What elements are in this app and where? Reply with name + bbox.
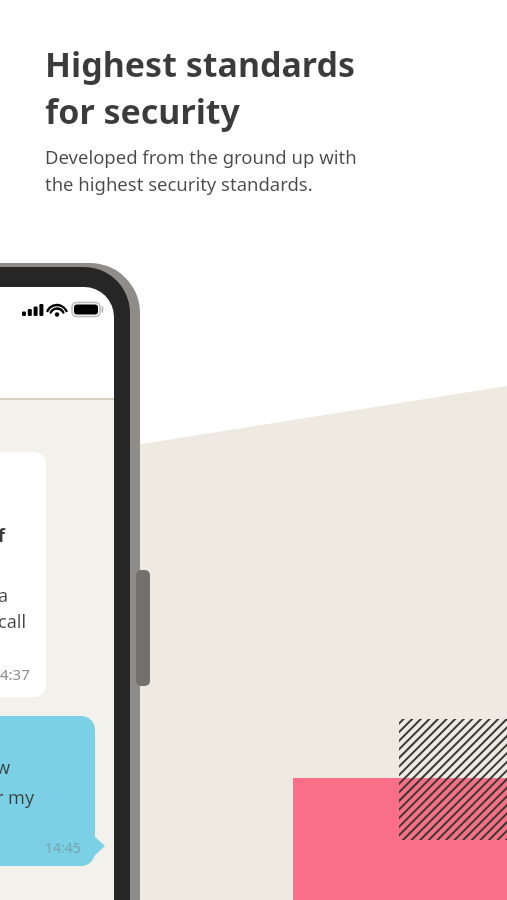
staticText: f [0,523,5,548]
staticText: a [0,583,9,608]
staticText: r my [0,785,35,810]
staticText: w [0,755,11,780]
staticText: Developed from the ground up with the hi… [45,144,357,197]
staticText: 4:37 [0,664,30,684]
staticText: 14:45 [45,838,81,857]
staticText: call [0,609,27,634]
staticText: Highest standards for security [45,41,355,134]
